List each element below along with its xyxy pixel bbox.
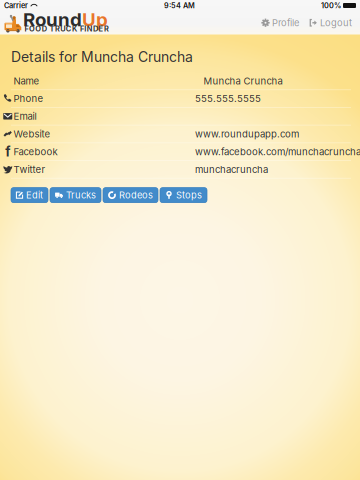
staticText: Twitter (13, 164, 45, 175)
staticText: Phone (13, 93, 43, 104)
button[interactable]: Rodeos (103, 188, 158, 203)
staticText: Rodeos (119, 189, 153, 201)
staticText: f (5, 144, 10, 160)
staticText: Profile (272, 17, 299, 28)
staticText: Details for Muncha Cruncha (11, 48, 193, 65)
staticText: Muncha Cruncha (203, 75, 282, 87)
staticText: Trucks (66, 189, 96, 201)
staticText: FOOD TRUCK FINDER (24, 24, 109, 33)
staticText: Carrier (4, 1, 28, 10)
button[interactable]: Edit (11, 188, 48, 203)
staticText: Name (13, 75, 39, 87)
staticText: Round (23, 8, 82, 31)
staticText: www.facebook.com/munchacruncha (195, 146, 360, 157)
staticText: Website (13, 128, 50, 140)
button[interactable]: Profile (262, 17, 299, 28)
staticText: Facebook (13, 146, 57, 157)
staticText: munchacruncha (195, 164, 268, 175)
button[interactable]: Logout (299, 17, 352, 28)
button[interactable]: Stops (160, 188, 207, 203)
staticText: www.roundupapp.com (195, 128, 299, 140)
staticText: Edit (26, 189, 43, 201)
staticText: 555.555.5555 (195, 93, 261, 104)
staticText: Email (13, 110, 36, 122)
staticText: 9:54 AM (164, 1, 195, 10)
staticText: 100% (321, 1, 341, 10)
staticText: Stops (176, 189, 202, 201)
staticText: Logout (320, 17, 352, 28)
button[interactable]: Trucks (50, 188, 101, 203)
staticText: Up (82, 8, 108, 31)
